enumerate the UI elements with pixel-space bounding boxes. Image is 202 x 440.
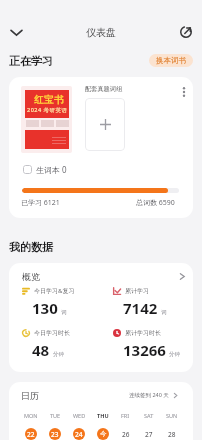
button[interactable]: THU <box>91 412 114 440</box>
staticText: 今 <box>100 430 107 438</box>
staticText: 词 <box>161 309 167 316</box>
button[interactable]: 概览 <box>9 263 193 289</box>
staticText: 生词本 0 <box>36 164 67 175</box>
staticText: 换本词书 <box>156 56 186 65</box>
staticText: 分钟 <box>169 351 180 358</box>
staticText: 已学习 6121 <box>21 198 60 208</box>
staticText: 分钟 <box>53 351 64 358</box>
staticText: 概览 <box>22 271 40 282</box>
button[interactable]: SAT <box>137 412 160 440</box>
staticText: 连续签到 240 天 <box>129 391 169 399</box>
button[interactable]: More options <box>175 83 193 101</box>
button[interactable]: 换本词书 <box>149 54 193 67</box>
staticText: 我的数据 <box>9 240 53 254</box>
staticText: 总词数 6590 <box>136 198 175 208</box>
staticText: 累计学习 <box>125 287 149 295</box>
staticText: MON <box>24 412 38 419</box>
staticText: 13266 <box>123 340 166 360</box>
button[interactable]: FRI <box>114 412 137 440</box>
staticText: SAT <box>144 412 154 419</box>
button[interactable]: Collapse <box>3 19 29 45</box>
staticText: 23 <box>51 430 59 439</box>
button[interactable]: TUE <box>43 412 67 440</box>
button[interactable]: WED <box>67 412 91 440</box>
staticText: THU <box>97 412 109 419</box>
staticText: TUE <box>50 412 61 419</box>
staticText: 27 <box>145 430 153 439</box>
button[interactable]: 生词本 0 <box>21 162 69 177</box>
staticText: 仪表盘 <box>86 26 116 39</box>
staticText: 26 <box>122 430 130 439</box>
staticText: 红宝书 <box>34 94 64 106</box>
staticText: 今日学习时长 <box>34 329 70 337</box>
staticText: 2024 考研英语 <box>27 106 68 114</box>
staticText: 22 <box>27 430 35 439</box>
staticText: WED <box>73 412 86 419</box>
staticText: 48 <box>32 340 50 360</box>
staticText: 日历 <box>21 390 39 401</box>
staticText: 正在学习 <box>9 54 53 68</box>
staticText: 今日学习&复习 <box>34 287 75 295</box>
button[interactable]: Add wordbook <box>85 98 125 151</box>
staticText: 28 <box>168 430 176 439</box>
button[interactable]: MON <box>19 412 43 440</box>
staticText: 词 <box>61 309 67 316</box>
staticText: 24 <box>75 430 83 439</box>
staticText: 累计学习时长 <box>125 329 161 337</box>
staticText: 7142 <box>123 298 158 318</box>
staticText: 配套真题词组 <box>85 85 123 93</box>
button[interactable]: 红宝书 <box>9 77 193 218</box>
button[interactable]: Share <box>173 19 199 45</box>
staticText: FRI <box>121 412 130 419</box>
staticText: SUN <box>166 412 178 419</box>
button[interactable]: SUN <box>160 412 183 440</box>
staticText: 130 <box>32 298 58 318</box>
button[interactable]: 连续签到 240 天 <box>127 389 181 401</box>
